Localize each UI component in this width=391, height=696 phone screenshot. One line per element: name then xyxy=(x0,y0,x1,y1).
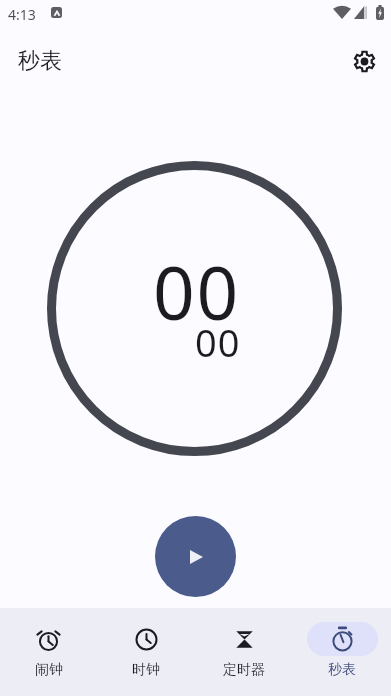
button[interactable]: 定时器 xyxy=(195,608,293,696)
staticText: 4:13 xyxy=(8,5,36,24)
staticText: 时钟 xyxy=(132,661,160,679)
staticText: 秒表 xyxy=(18,47,62,75)
button[interactable]: 秒表 xyxy=(293,608,391,696)
staticText: 00 xyxy=(195,316,241,368)
staticText: 00 xyxy=(153,242,241,341)
staticText: 定时器 xyxy=(223,661,265,679)
button[interactable]: Settings xyxy=(342,39,386,83)
button[interactable]: 闹钟 xyxy=(0,608,97,696)
staticText: 闹钟 xyxy=(35,661,63,679)
staticText: 秒表 xyxy=(328,661,356,679)
button[interactable]: 时钟 xyxy=(97,608,195,696)
button[interactable]: Start xyxy=(155,516,236,597)
